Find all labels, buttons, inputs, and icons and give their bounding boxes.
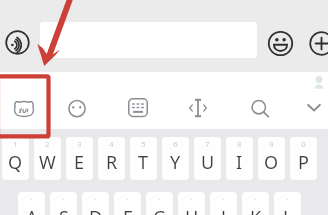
button[interactable]: 1 [2, 137, 29, 180]
staticText: P [298, 150, 309, 175]
staticText: 4 [98, 139, 125, 149]
staticText: G [153, 205, 167, 215]
button[interactable]: · [178, 192, 205, 215]
button[interactable]: Emoticons [64, 95, 90, 121]
button[interactable]: 2 [34, 137, 61, 180]
button[interactable]: · [210, 192, 237, 215]
staticText: 5 [130, 139, 157, 149]
button[interactable]: 5 [130, 137, 157, 180]
button[interactable]: 3 [66, 137, 93, 180]
staticText: D [89, 205, 103, 215]
staticText: 0 [290, 139, 317, 149]
staticText: E [74, 150, 85, 175]
button[interactable]: Emoji [268, 31, 293, 56]
button[interactable]: Voice input [5, 30, 30, 55]
staticText: J [221, 205, 226, 215]
button[interactable]: 7 [194, 137, 221, 180]
button[interactable]: · [274, 192, 301, 215]
staticText: 1 [2, 139, 29, 149]
button[interactable]: 9 [258, 137, 285, 180]
button[interactable]: 0 [290, 137, 317, 180]
button[interactable]: · [242, 192, 269, 215]
staticText: L [283, 205, 293, 215]
button[interactable]: · [146, 192, 173, 215]
staticText: 7 [194, 139, 221, 149]
button[interactable]: 6 [162, 137, 189, 180]
staticText: 3 [66, 139, 93, 149]
button[interactable]: Search [246, 95, 272, 121]
staticText: U [201, 150, 215, 175]
staticText: S [59, 205, 69, 215]
staticText: Y [170, 150, 181, 175]
button[interactable]: Collapse keyboard [301, 95, 327, 121]
button[interactable]: Move cursor [185, 95, 211, 121]
staticText: 2 [34, 139, 61, 149]
staticText: A [26, 205, 38, 215]
staticText: F [123, 205, 133, 215]
button[interactable]: 8 [226, 137, 253, 180]
staticText: I [236, 150, 243, 175]
button[interactable]: · [114, 192, 141, 215]
staticText: R [106, 150, 118, 175]
staticText: 9 [258, 139, 285, 149]
button[interactable] [40, 22, 257, 58]
staticText: K [250, 205, 262, 215]
staticText: Q [8, 150, 23, 175]
button[interactable]: · [82, 192, 109, 215]
staticText: H [185, 205, 199, 215]
button[interactable]: · [50, 192, 77, 215]
staticText: 6 [162, 139, 189, 149]
button[interactable]: Baidu input [11, 95, 37, 121]
staticText: O [264, 150, 279, 175]
button[interactable]: · [18, 192, 45, 215]
staticText: 8 [226, 139, 253, 149]
button[interactable]: 4 [98, 137, 125, 180]
button[interactable]: Keyboard layout [125, 95, 151, 121]
staticText: W [39, 150, 56, 175]
button[interactable]: Add [309, 31, 328, 56]
staticText: T [138, 150, 149, 175]
